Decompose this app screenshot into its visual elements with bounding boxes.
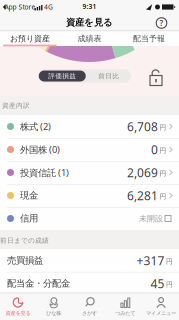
button[interactable]: 投資信託 (1)	[0, 161, 179, 184]
staticText: 資産を見る	[66, 17, 113, 28]
staticText: 0	[151, 141, 158, 157]
staticText: 評価損益	[48, 72, 76, 80]
staticText: 6,708	[127, 118, 158, 134]
staticText: 2,069	[127, 164, 158, 180]
staticText: ?	[159, 18, 163, 28]
button[interactable]: 成績表	[60, 31, 119, 46]
staticText: 円	[166, 257, 173, 266]
staticText: お預り資産	[10, 34, 50, 43]
button[interactable]: 売買損益	[0, 249, 179, 272]
staticText: 円	[166, 280, 173, 289]
button[interactable]: さがす	[72, 293, 107, 319]
staticText: 外国株 (0)	[20, 143, 60, 156]
staticText: 未開設	[139, 214, 163, 223]
button[interactable]: ひな株	[36, 293, 71, 319]
staticText: 資産内訳	[2, 101, 30, 110]
button[interactable]: 外国株 (0)	[0, 138, 179, 161]
button[interactable]: 現金	[0, 184, 179, 207]
button[interactable]: 信用	[0, 207, 179, 230]
staticText: 売買損益	[7, 255, 43, 266]
staticText: 現金	[20, 190, 38, 201]
staticText: 円	[159, 192, 166, 201]
staticText: 前日までの成績	[0, 236, 49, 245]
button[interactable]: ヘルプ	[154, 16, 168, 30]
button[interactable]: お預り資産	[0, 31, 59, 46]
staticText: 信用	[20, 213, 38, 224]
staticText: さがす	[82, 310, 97, 317]
staticText: 45	[150, 275, 164, 291]
staticText: 前日比	[98, 72, 119, 80]
staticText: 配当金・分配金	[7, 278, 70, 289]
staticText: 4G	[44, 3, 53, 11]
button[interactable]: 評価損益	[38, 69, 131, 83]
staticText: つみたて	[115, 310, 135, 317]
button[interactable]: 配当予報	[119, 31, 178, 46]
button[interactable]: 配当金・分配金	[0, 272, 179, 295]
staticText: マイメニュー	[146, 310, 176, 317]
staticText: ひな株	[46, 310, 61, 317]
staticText: 株式 (2)	[20, 120, 51, 133]
staticText: 資産を見る	[5, 310, 30, 317]
staticText: 9:31	[82, 2, 96, 11]
staticText: +317	[136, 252, 164, 268]
button[interactable]: マイメニュー	[144, 293, 179, 319]
staticText: App Store	[4, 3, 35, 11]
staticText: 円	[159, 146, 166, 155]
staticText: 成績表	[77, 34, 101, 43]
button[interactable]: 株式 (2)	[0, 115, 179, 138]
staticText: 配当予報	[133, 34, 165, 43]
staticText: 円	[159, 169, 166, 178]
staticText: 6,281	[127, 187, 158, 203]
staticText: 投資信託 (1)	[20, 166, 69, 179]
button[interactable]: 資産を見る	[0, 293, 35, 319]
button[interactable]: つみたて	[108, 293, 143, 319]
staticText: 円	[159, 123, 166, 132]
